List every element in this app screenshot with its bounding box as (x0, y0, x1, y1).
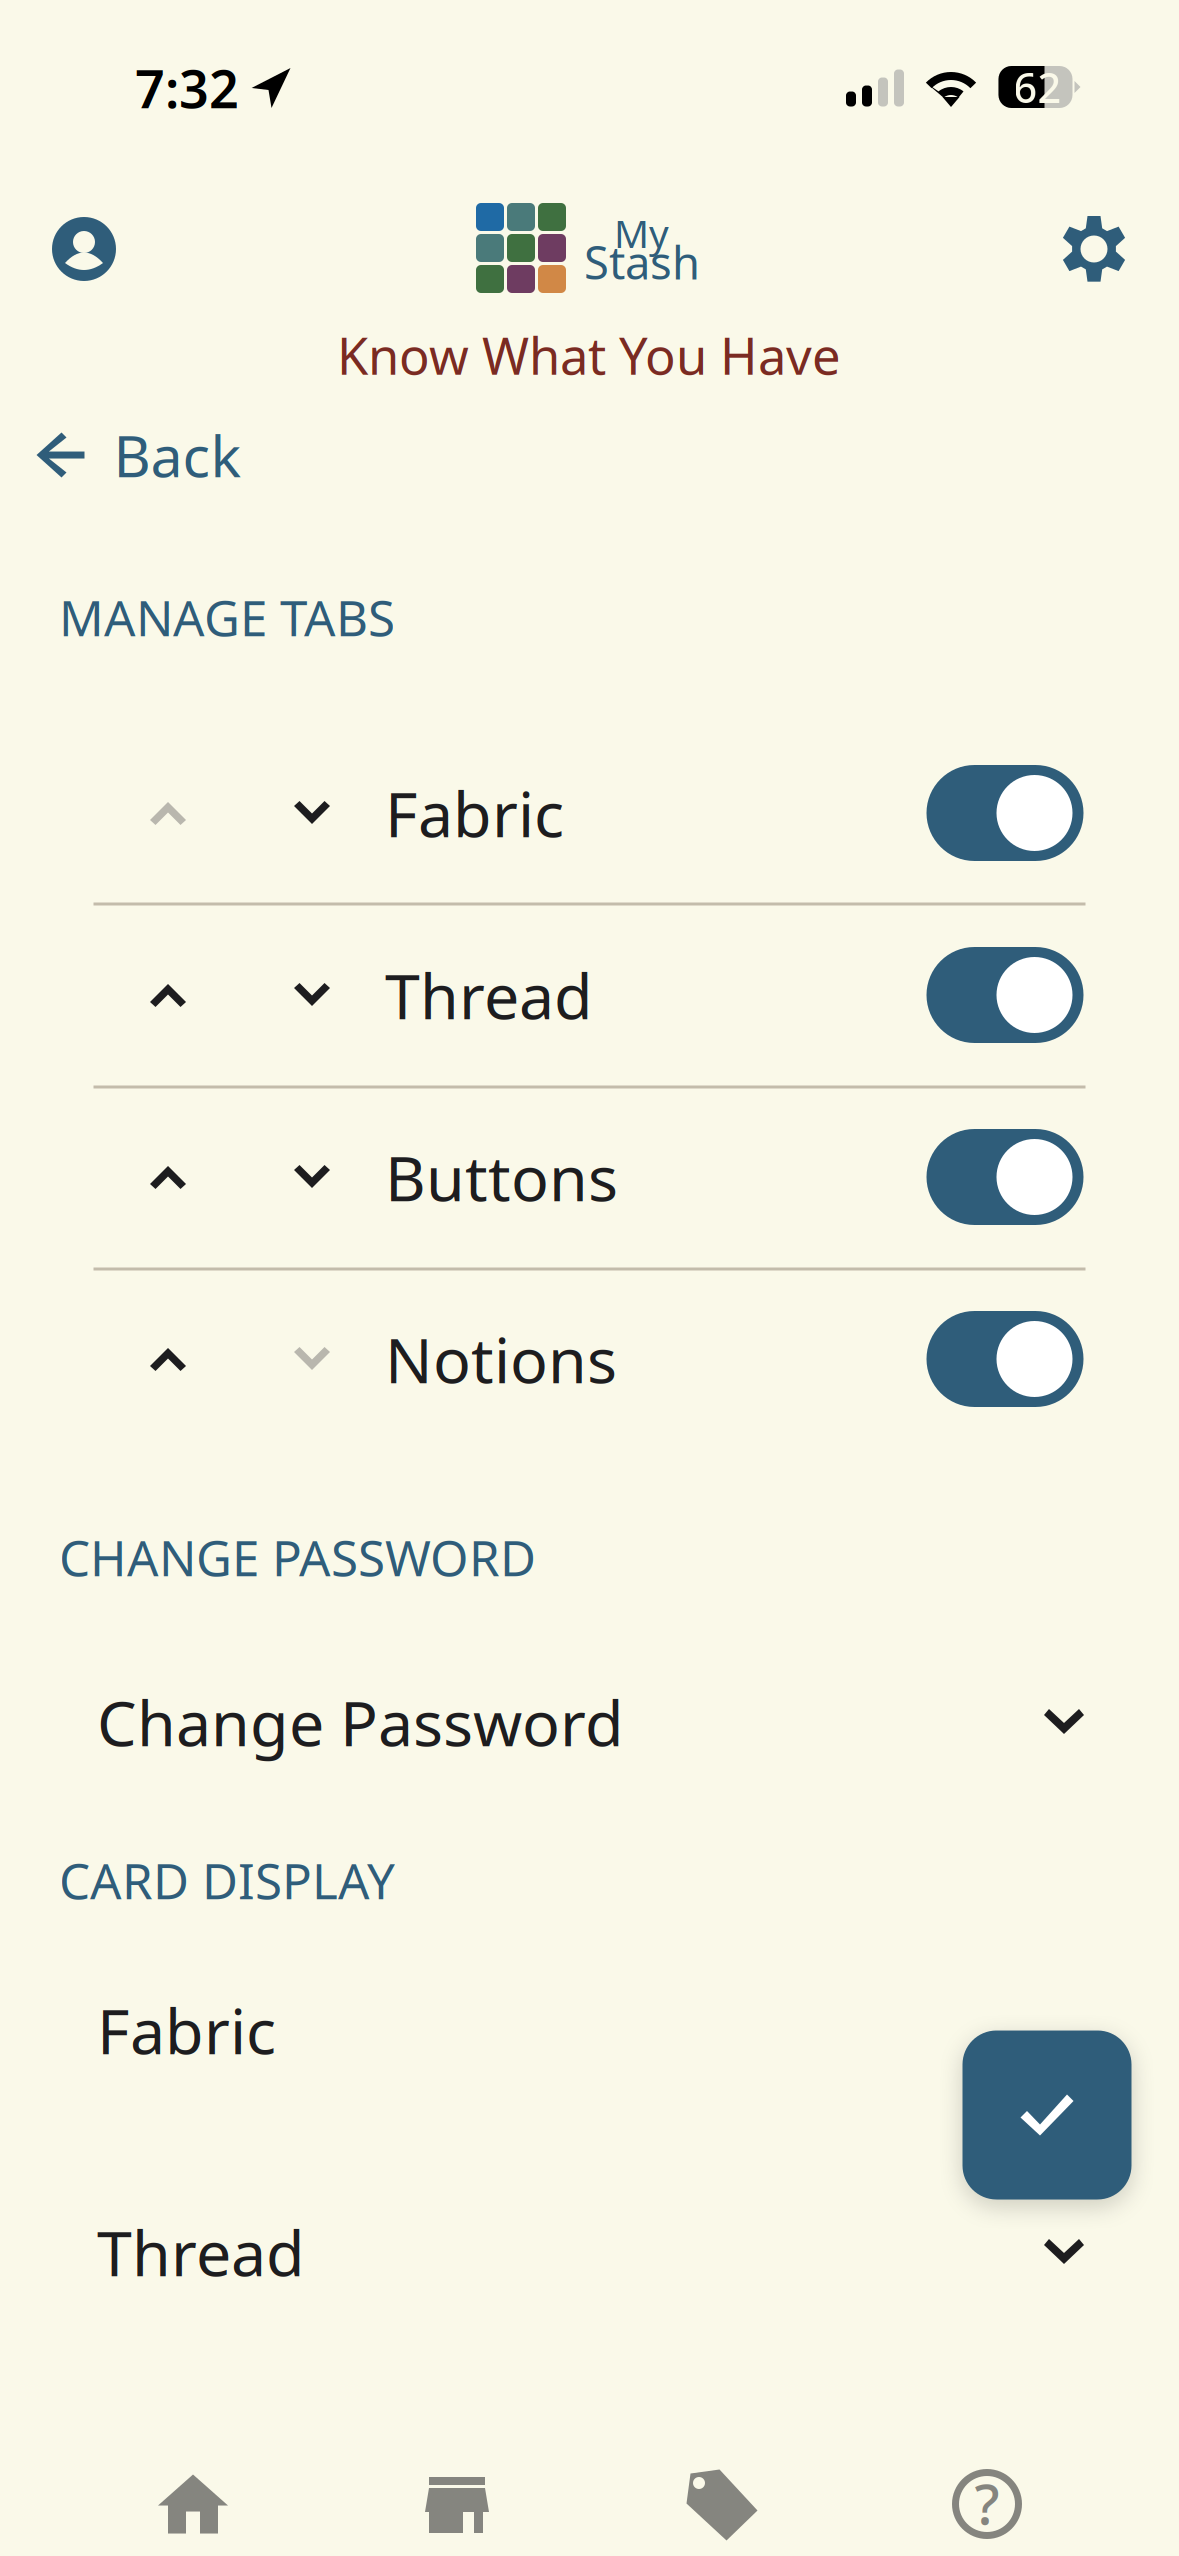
staticText: CARD DISPLAY (59, 1847, 395, 1913)
button[interactable]: Move Thread up (124, 957, 212, 1033)
staticText: Thread (385, 953, 593, 1037)
button[interactable]: Shop (352, 2445, 562, 2556)
button[interactable]: Back (24, 393, 253, 517)
button[interactable]: Move Notions up (124, 1321, 212, 1397)
button[interactable]: Move Buttons up (124, 1139, 212, 1215)
button[interactable]: Move Thread down (268, 957, 356, 1033)
staticText: 7:32 (135, 53, 239, 123)
button[interactable]: Change Password (0, 1647, 1179, 1797)
staticText: My (614, 207, 669, 259)
staticText: Buttons (385, 1135, 618, 1219)
button[interactable]: Help (882, 2444, 1092, 2556)
staticText: Stash (584, 232, 700, 292)
button[interactable]: Settings (1046, 201, 1142, 297)
staticText: Change Password (97, 1680, 624, 1764)
staticText: Notions (385, 1317, 617, 1401)
button[interactable]: Thread (0, 2177, 1179, 2327)
staticText: Thread (97, 2210, 305, 2294)
button[interactable]: Buttons enabled (926, 1129, 1083, 1225)
button[interactable]: Move Notions down (268, 1321, 356, 1397)
staticText: Fabric (385, 771, 564, 855)
button[interactable]: Thread enabled (926, 947, 1083, 1043)
button[interactable]: Move Buttons down (268, 1139, 356, 1215)
button[interactable]: Account (36, 201, 132, 297)
staticText: Back (113, 417, 241, 493)
staticText: Fabric (97, 1988, 276, 2072)
staticText: Know What You Have (337, 321, 841, 389)
staticText: ? (974, 2466, 999, 2540)
button[interactable]: Move Fabric up (124, 775, 212, 851)
button[interactable]: Notions enabled (926, 1311, 1083, 1407)
staticText: MANAGE TABS (59, 584, 395, 650)
staticText: 62 (1013, 60, 1061, 114)
button[interactable]: Home (88, 2444, 298, 2556)
button[interactable]: Fabric selected (962, 2030, 1131, 2199)
staticText: CHANGE PASSWORD (59, 1524, 536, 1590)
button[interactable]: Move Fabric down (268, 775, 356, 851)
button[interactable]: Tags (617, 2445, 827, 2556)
button[interactable]: Fabric enabled (926, 765, 1083, 861)
